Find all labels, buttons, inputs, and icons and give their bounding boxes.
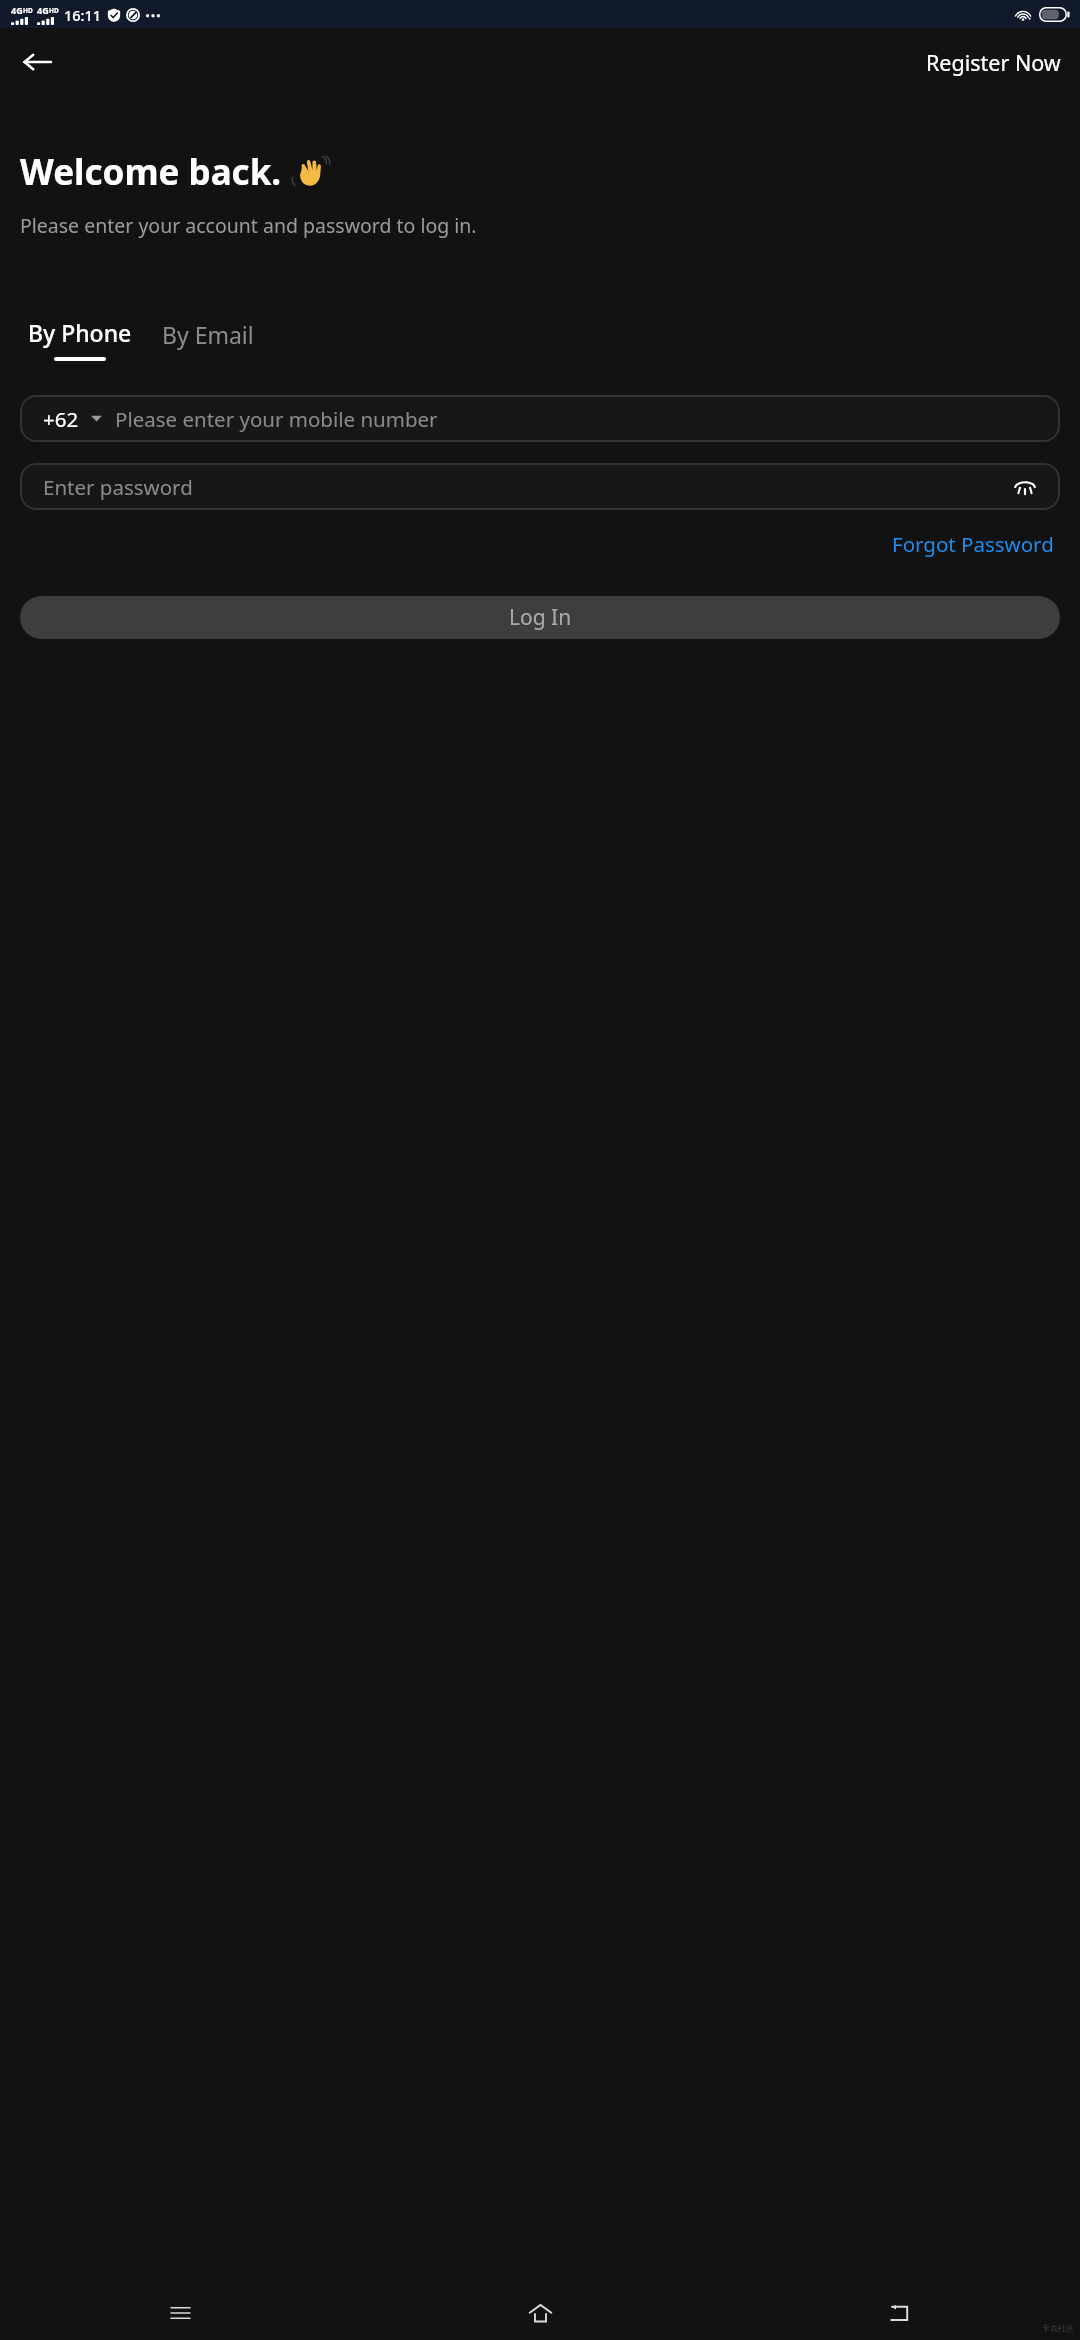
staticText: Forgot Password xyxy=(892,530,1054,558)
staticText: 4G xyxy=(11,4,23,16)
staticText: Enter password xyxy=(43,473,1010,501)
button[interactable]: Home xyxy=(518,2291,562,2335)
staticText: 4G xyxy=(37,4,49,16)
button[interactable]: Show password xyxy=(1010,472,1040,502)
button[interactable]: Back xyxy=(878,2291,922,2335)
staticText: +62 xyxy=(43,405,79,433)
staticText: Please enter your account and password t… xyxy=(20,212,1054,239)
staticText: HD xyxy=(49,6,59,15)
button[interactable]: Enter password xyxy=(20,463,1060,510)
button[interactable]: By Phone xyxy=(20,317,140,361)
button[interactable]: Register Now xyxy=(907,38,1080,87)
staticText: HD xyxy=(23,6,33,15)
button[interactable]: Forgot Password xyxy=(886,524,1060,564)
staticText: By Email xyxy=(162,319,254,350)
staticText: Please enter your mobile number xyxy=(115,405,438,433)
staticText: Register Now xyxy=(926,48,1061,77)
button[interactable]: Recent apps xyxy=(158,2291,202,2335)
button[interactable]: By Email xyxy=(154,317,262,352)
staticText: 16:11 xyxy=(64,5,102,25)
button[interactable]: Back xyxy=(6,31,68,93)
staticText: Log In xyxy=(509,603,572,632)
staticText: 卡农社区 xyxy=(1042,2323,1074,2333)
button[interactable]: Log In xyxy=(20,596,1060,639)
staticText: By Phone xyxy=(28,317,132,348)
staticText: Welcome back. xyxy=(20,148,282,196)
button[interactable]: +62 xyxy=(20,395,1060,442)
